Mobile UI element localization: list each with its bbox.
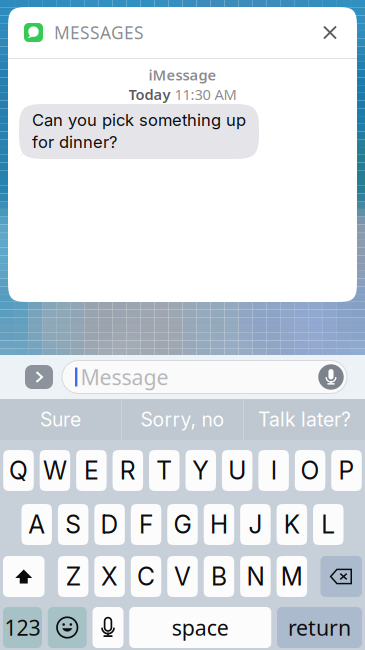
staticText: R — [120, 456, 136, 485]
button[interactable]: Y — [185, 450, 216, 491]
staticText: U — [228, 456, 246, 485]
button[interactable]: Shift — [3, 556, 44, 597]
staticText: L — [321, 510, 335, 539]
button[interactable]: Dictation — [92, 607, 123, 648]
staticText: X — [101, 562, 118, 591]
staticText: K — [284, 510, 300, 539]
button[interactable]: R — [113, 450, 143, 491]
staticText: Sure — [40, 408, 81, 431]
button[interactable]: W — [40, 450, 70, 491]
button[interactable]: Sorry, no — [122, 399, 243, 440]
staticText: M — [281, 562, 303, 591]
button[interactable]: Talk later? — [244, 399, 365, 440]
staticText: S — [65, 510, 81, 539]
button[interactable]: A — [21, 504, 52, 545]
staticText: Y — [192, 456, 209, 485]
button[interactable]: space — [129, 607, 271, 648]
staticText: G — [173, 510, 191, 539]
button[interactable]: J — [240, 504, 271, 545]
button[interactable]: G — [167, 504, 198, 545]
staticText: V — [174, 562, 191, 591]
button[interactable]: M — [277, 556, 307, 597]
staticText: Q — [9, 456, 28, 485]
staticText: D — [101, 510, 119, 539]
button[interactable]: D — [94, 504, 125, 545]
button[interactable]: Dictate — [317, 360, 345, 393]
staticText: Sorry, no — [140, 408, 224, 431]
staticText: B — [211, 562, 227, 591]
staticText: C — [137, 562, 155, 591]
button[interactable]: Dismiss notification — [314, 16, 346, 48]
staticText: J — [248, 510, 262, 539]
staticText: 123 — [4, 613, 40, 642]
button[interactable]: T — [149, 450, 179, 491]
staticText: Message — [80, 363, 168, 391]
staticText: O — [301, 456, 320, 485]
button[interactable]: H — [204, 504, 234, 545]
button[interactable]: Z — [58, 556, 88, 597]
button[interactable]: P — [331, 450, 362, 491]
button[interactable]: F — [131, 504, 161, 545]
staticText: return — [288, 613, 351, 642]
button[interactable]: Emoji — [48, 607, 87, 648]
staticText: E — [84, 456, 99, 485]
button[interactable]: V — [167, 556, 198, 597]
staticText: T — [156, 456, 172, 485]
staticText: F — [139, 510, 153, 539]
staticText: H — [210, 510, 228, 539]
staticText: Can you pick something up — [32, 110, 246, 130]
button[interactable]: X — [94, 556, 125, 597]
button[interactable]: B — [204, 556, 234, 597]
button[interactable]: S — [58, 504, 88, 545]
staticText: N — [246, 562, 264, 591]
button[interactable]: U — [222, 450, 252, 491]
button[interactable]: Delete — [320, 556, 362, 597]
staticText: P — [338, 456, 354, 485]
staticText: Z — [66, 562, 81, 591]
staticText: W — [43, 456, 67, 485]
staticText: iMessage — [148, 65, 216, 84]
staticText: A — [28, 510, 45, 539]
button[interactable]: E — [76, 450, 107, 491]
staticText: for dinner? — [32, 132, 117, 152]
button[interactable]: I — [258, 450, 289, 491]
button[interactable]: Numbers — [3, 607, 42, 648]
button[interactable]: Sure — [0, 399, 121, 440]
button[interactable]: K — [277, 504, 307, 545]
staticText: space — [172, 613, 229, 642]
staticText: Talk later? — [258, 408, 351, 431]
button[interactable]: return — [277, 607, 362, 648]
staticText: 11:30 AM — [174, 84, 236, 104]
button[interactable]: O — [295, 450, 325, 491]
button[interactable]: N — [240, 556, 271, 597]
button[interactable]: More options — [16, 355, 62, 399]
staticText: I — [271, 456, 277, 485]
button[interactable]: L — [313, 504, 343, 545]
button[interactable]: Q — [3, 450, 34, 491]
staticText: Today — [128, 84, 170, 104]
button[interactable]: C — [131, 556, 161, 597]
staticText: MESSAGES — [54, 21, 144, 44]
